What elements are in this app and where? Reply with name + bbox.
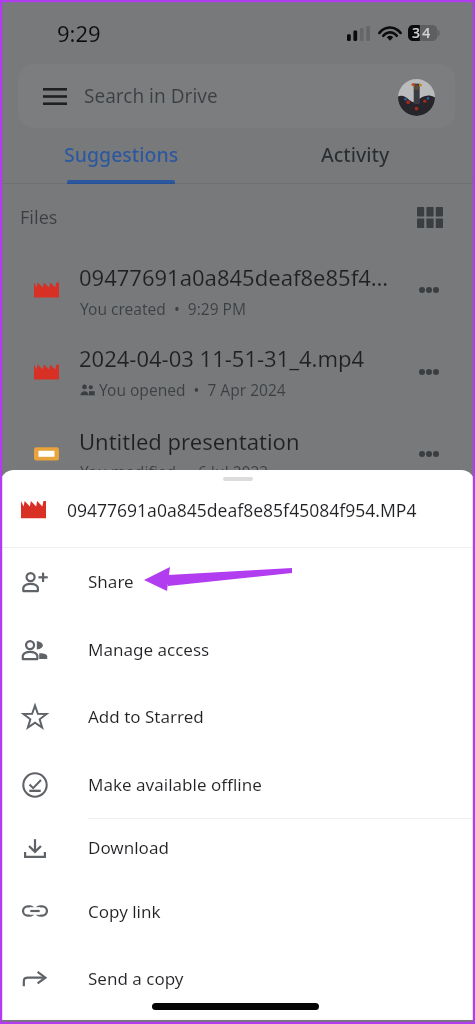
button[interactable] <box>0 548 475 616</box>
staticText: 9:29 <box>57 18 101 48</box>
button[interactable] <box>0 133 237 184</box>
staticText: Copy link <box>88 900 161 923</box>
staticText: Search in Drive <box>84 83 218 109</box>
staticText: You opened • 7 Apr 2024 <box>99 379 286 400</box>
staticText: Download <box>88 836 169 859</box>
button[interactable] <box>0 751 475 816</box>
staticText: 2024-04-03 11-51-31_4.mp4 <box>79 343 399 373</box>
staticText: 09477691a0a845deaf8e85f45... <box>79 262 399 292</box>
button[interactable] <box>0 616 475 684</box>
staticText: Untitled presentation <box>79 426 399 456</box>
staticText: Activity <box>321 141 390 168</box>
button[interactable]: Account <box>398 79 435 116</box>
button[interactable] <box>18 64 455 128</box>
button[interactable]: Switch to grid view <box>417 207 443 228</box>
button[interactable] <box>0 816 475 879</box>
staticText: Make available offline <box>88 773 262 796</box>
button[interactable] <box>0 945 475 1020</box>
button[interactable] <box>0 487 475 547</box>
button[interactable]: More options <box>405 266 453 314</box>
button[interactable] <box>0 237 475 318</box>
staticText: You modified • 6 Jul 2023 <box>80 461 269 482</box>
staticText: Share <box>88 570 134 593</box>
staticText: Add to Starred <box>88 705 204 728</box>
staticText: Send a copy <box>88 967 184 990</box>
button[interactable]: More options <box>405 348 453 396</box>
button[interactable] <box>0 683 475 751</box>
button[interactable]: More options <box>405 430 453 478</box>
staticText: Suggestions <box>64 141 179 168</box>
button[interactable] <box>0 401 475 482</box>
staticText: 34 <box>412 23 433 39</box>
staticText: Files <box>20 205 58 230</box>
staticText: Manage access <box>88 638 210 661</box>
button[interactable] <box>0 880 475 946</box>
staticText: 09477691a0a845deaf8e85f45084f954.MP4 <box>67 498 417 522</box>
button[interactable]: Menu <box>43 88 67 105</box>
button[interactable] <box>0 319 475 400</box>
button[interactable] <box>237 133 473 184</box>
staticText: You created • 9:29 PM <box>80 298 246 319</box>
